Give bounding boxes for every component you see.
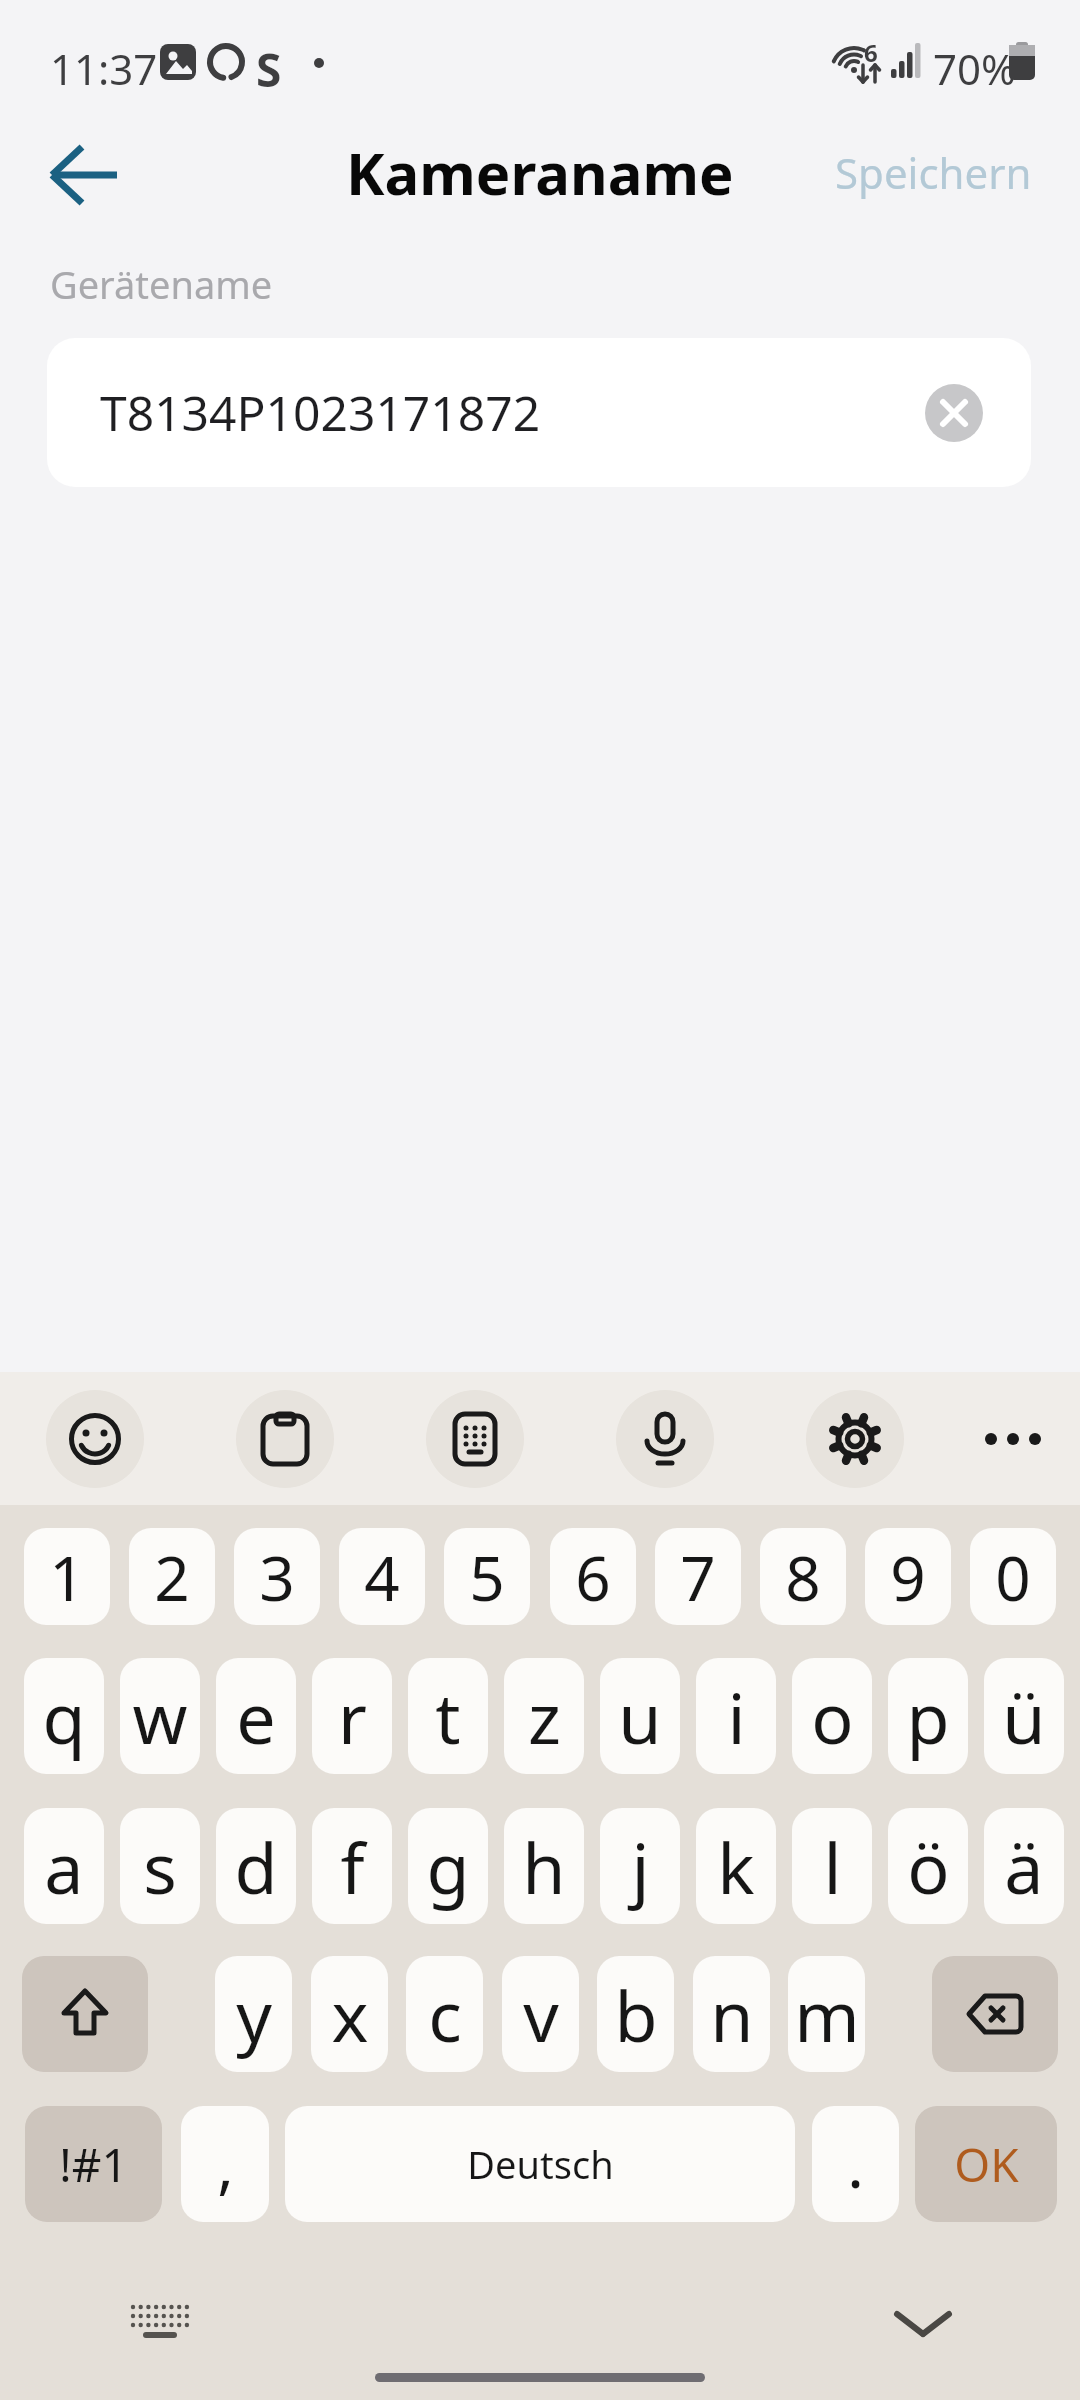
button[interactable]: u [600,1658,680,1774]
staticText: 1 [49,1535,85,1619]
staticText: r [338,1669,367,1764]
button[interactable] [120,2294,200,2354]
button[interactable]: ö [888,1808,968,1924]
staticText: Deutsch [467,2138,614,2190]
staticText: o [811,1669,854,1764]
staticText: l [823,1819,842,1914]
button[interactable] [932,1956,1058,2072]
staticText: w [132,1669,188,1764]
button[interactable]: t [408,1658,488,1774]
button[interactable]: , [181,2106,269,2222]
button[interactable]: 5 [444,1528,530,1625]
button[interactable] [426,1390,524,1488]
staticText: 6 [864,36,878,69]
button[interactable]: 8 [760,1528,846,1625]
staticText: e [236,1669,276,1764]
button[interactable]: k [696,1808,776,1924]
staticText: i [727,1669,746,1764]
staticText: m [794,1967,860,2062]
button[interactable] [806,1390,904,1488]
button[interactable]: Speichern [835,144,1032,201]
staticText: 6 [575,1535,611,1619]
button[interactable]: g [408,1808,488,1924]
button[interactable]: e [216,1658,296,1774]
staticText: j [631,1819,650,1914]
staticText: . [847,2122,864,2206]
button[interactable]: b [597,1956,674,2072]
button[interactable] [236,1390,334,1488]
button[interactable]: j [600,1808,680,1924]
staticText: y [236,1967,272,2062]
button[interactable]: 4 [339,1528,425,1625]
staticText: S [256,38,282,101]
staticText: c [428,1967,462,2062]
staticText: t [435,1669,461,1764]
staticText: s [143,1819,177,1914]
staticText: h [522,1819,566,1914]
button[interactable] [46,1390,144,1488]
button[interactable] [880,2294,966,2354]
button[interactable] [22,1956,148,2072]
staticText: v [523,1967,559,2062]
button[interactable]: n [693,1956,770,2072]
staticText: u [618,1669,662,1764]
button[interactable]: p [888,1658,968,1774]
staticText: 0 [995,1535,1031,1619]
button[interactable]: T8134P1023171872 [47,338,1031,487]
button[interactable]: h [504,1808,584,1924]
button[interactable]: 6 [550,1528,636,1625]
button[interactable]: o [792,1658,872,1774]
staticText: T8134P1023171872 [100,380,541,445]
staticText: Kameraname [346,133,734,212]
button[interactable]: q [24,1658,104,1774]
button[interactable]: w [120,1658,200,1774]
button[interactable]: s [120,1808,200,1924]
button[interactable]: y [215,1956,292,2072]
button[interactable]: x [311,1956,388,2072]
staticText: 9 [890,1535,926,1619]
button[interactable]: c [406,1956,483,2072]
button[interactable]: a [24,1808,104,1924]
button[interactable] [925,384,983,442]
staticText: 2 [154,1535,190,1619]
button[interactable]: i [696,1658,776,1774]
button[interactable]: 0 [970,1528,1056,1625]
button[interactable] [616,1390,714,1488]
staticText: 8 [785,1535,821,1619]
button[interactable]: 1 [24,1528,110,1625]
staticText: 11:37 [50,40,158,97]
button[interactable]: !#1 [25,2106,162,2222]
staticText: q [42,1669,86,1764]
staticText: ö [907,1819,950,1914]
button[interactable]: v [502,1956,579,2072]
button[interactable]: . [812,2106,899,2222]
button[interactable] [30,120,140,230]
staticText: f [340,1819,365,1914]
staticText: Speichern [835,144,1032,201]
button[interactable]: z [504,1658,584,1774]
staticText: p [906,1669,950,1764]
button[interactable]: m [788,1956,865,2072]
staticText: ü [1002,1669,1046,1764]
button[interactable]: d [216,1808,296,1924]
button[interactable]: l [792,1808,872,1924]
button[interactable]: ä [984,1808,1064,1924]
button[interactable]: 3 [234,1528,320,1625]
staticText: x [331,1967,369,2062]
button[interactable]: r [312,1658,392,1774]
staticText: n [710,1967,754,2062]
button[interactable]: OK [915,2106,1057,2222]
button[interactable]: Deutsch [285,2106,795,2222]
staticText: b [614,1967,658,2062]
button[interactable]: f [312,1808,392,1924]
staticText: ä [1004,1819,1044,1914]
staticText: 70% [933,40,1016,97]
button[interactable]: 9 [865,1528,951,1625]
button[interactable]: ü [984,1658,1064,1774]
button[interactable]: 2 [129,1528,215,1625]
staticText: k [717,1819,755,1914]
staticText: OK [954,2133,1019,2196]
button[interactable]: 7 [655,1528,741,1625]
staticText: z [528,1669,561,1764]
staticText: !#1 [59,2133,128,2196]
